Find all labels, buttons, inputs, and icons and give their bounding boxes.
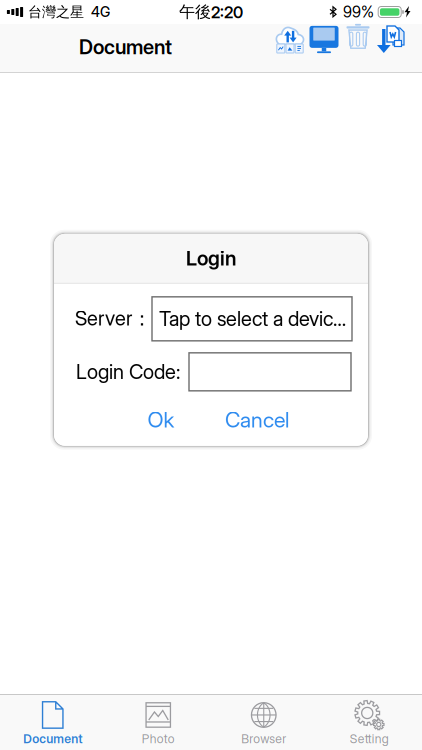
staticText: 4G <box>91 3 110 20</box>
staticText: Document <box>23 731 82 746</box>
staticText: Login <box>186 246 236 270</box>
staticText: Server： <box>75 306 152 331</box>
staticText: Setting <box>350 731 389 746</box>
button[interactable]: Cancel <box>209 401 305 439</box>
button[interactable]: Sync <box>273 25 307 71</box>
staticText: Photo <box>142 731 175 746</box>
button[interactable]: Document <box>0 694 105 750</box>
button[interactable]: Display <box>307 25 341 71</box>
staticText: Browser <box>241 731 286 746</box>
staticText: 台灣之星 <box>28 3 84 21</box>
staticText: 午後2:20 <box>179 2 243 22</box>
staticText: Cancel <box>225 407 289 433</box>
staticText: 99% <box>343 3 374 21</box>
staticText: Document <box>79 35 172 59</box>
button[interactable]: Delete <box>341 25 375 71</box>
staticText: Tap to select a devic… <box>159 307 346 331</box>
staticText: Ok <box>147 407 174 433</box>
button[interactable]: Photo <box>105 694 211 750</box>
staticText: Login Code: <box>76 360 180 384</box>
button[interactable]: Browser <box>211 694 316 750</box>
button[interactable]: Ok <box>113 401 209 439</box>
button[interactable]: Setting <box>316 694 422 750</box>
button[interactable]: Download <box>375 25 409 71</box>
